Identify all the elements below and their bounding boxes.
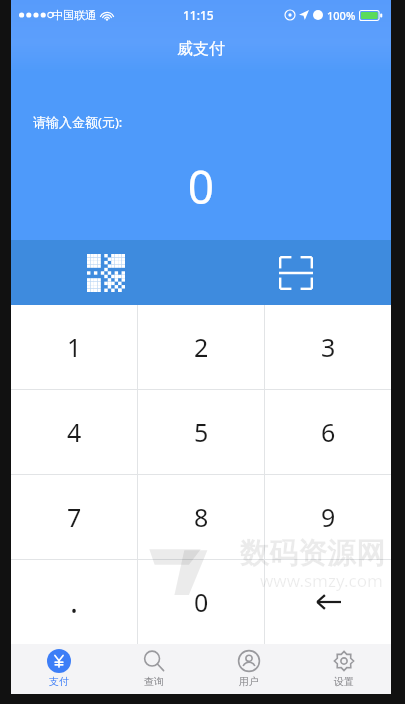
staticText: 7 [67, 500, 82, 534]
button[interactable]: 查询 [106, 644, 201, 694]
staticText: 2 [194, 330, 209, 364]
button[interactable]: 扫一扫 [201, 240, 391, 305]
staticText: 9 [321, 500, 336, 534]
button[interactable]: 支付 [11, 644, 106, 694]
staticText: 0 [11, 155, 391, 218]
staticText: 用户 [239, 675, 259, 688]
staticText: . [70, 581, 79, 622]
staticText: 4 [67, 415, 82, 449]
staticText: 100% [327, 8, 356, 23]
staticText: 查询 [144, 675, 164, 688]
button[interactable]: 3 [265, 305, 391, 389]
staticText: 0 [194, 585, 209, 619]
button[interactable]: 7 [11, 474, 137, 559]
button[interactable]: 6 [265, 389, 391, 474]
button[interactable]: 9 [265, 474, 391, 559]
staticText: 6 [321, 415, 336, 449]
staticText: 支付 [49, 675, 69, 688]
button[interactable]: 8 [138, 474, 264, 559]
staticText: 1 [67, 330, 82, 364]
button[interactable]: 设置 [296, 644, 391, 694]
staticText: www.smzy.com [260, 569, 383, 592]
staticText: 威支付 [11, 39, 391, 59]
button[interactable]: 2 [138, 305, 264, 389]
button[interactable]: 4 [11, 389, 137, 474]
button[interactable]: 5 [138, 389, 264, 474]
staticText: 5 [194, 415, 209, 449]
button[interactable]: 退格 [265, 559, 391, 644]
button[interactable]: 用户 [201, 644, 296, 694]
staticText: 请输入金额(元): [33, 113, 123, 131]
staticText: 中国联通 [52, 8, 96, 22]
staticText: 8 [194, 500, 209, 534]
staticText: 设置 [334, 675, 354, 688]
staticText: 11:15 [183, 7, 214, 23]
staticText: 数码资源网 [240, 535, 385, 572]
button[interactable]: . [11, 559, 137, 644]
button[interactable]: 1 [11, 305, 137, 389]
staticText: 3 [321, 330, 336, 364]
button[interactable]: 0 [138, 559, 264, 644]
button[interactable]: 我的收款二维码 [11, 240, 201, 305]
